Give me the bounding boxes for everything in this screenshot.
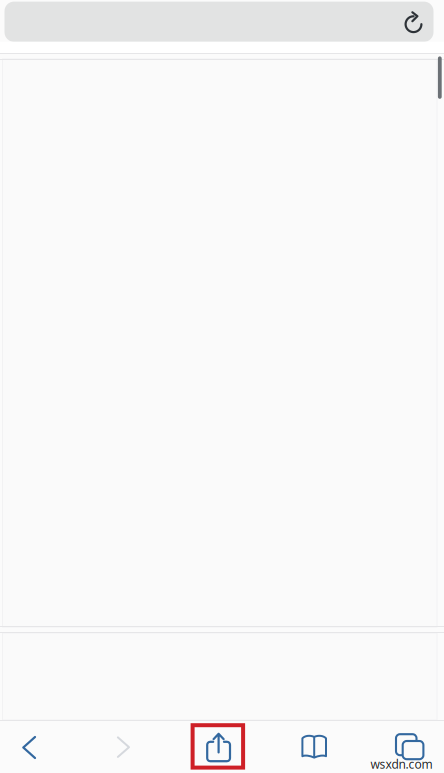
- button[interactable]: Share: [0, 0, 444, 773]
- button[interactable]: Tabs: [0, 0, 444, 773]
- button[interactable]: Reload: [0, 0, 444, 773]
- button[interactable]: Forward: [0, 0, 444, 773]
- button[interactable]: Back: [0, 0, 444, 773]
- button[interactable]: Bookmarks: [0, 0, 444, 773]
- staticText: wsxdn.com: [370, 756, 432, 772]
